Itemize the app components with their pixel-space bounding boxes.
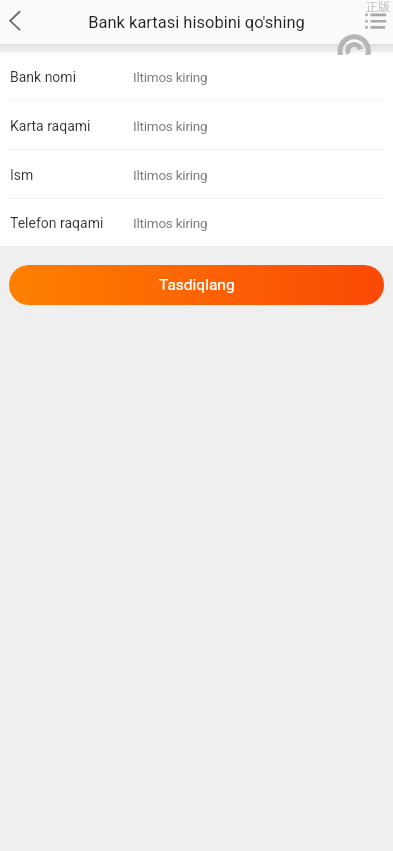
button[interactable]: Back <box>0 0 44 44</box>
staticText: Telefon raqami <box>10 215 133 231</box>
staticText: Ism <box>10 167 133 183</box>
staticText: Bank kartasi hisobini qo'shing <box>88 13 305 32</box>
staticText: Iltimos kiring <box>133 69 208 85</box>
staticText: 正版 <box>366 0 390 14</box>
button[interactable]: Karta raqami <box>0 101 393 150</box>
button[interactable]: Bank nomi <box>0 52 393 101</box>
button[interactable]: Ism <box>0 150 393 199</box>
staticText: Iltimos kiring <box>133 118 208 134</box>
button[interactable]: Telefon raqami <box>0 199 393 246</box>
staticText: Iltimos kiring <box>133 167 208 183</box>
button[interactable]: Tasdiqlang <box>9 265 384 305</box>
staticText: Bank nomi <box>10 69 133 85</box>
staticText: Karta raqami <box>10 118 133 134</box>
staticText: Iltimos kiring <box>133 215 208 231</box>
staticText: Tasdiqlang <box>159 276 235 294</box>
